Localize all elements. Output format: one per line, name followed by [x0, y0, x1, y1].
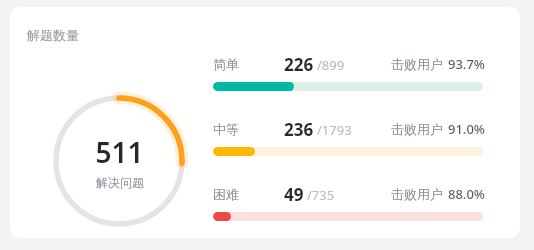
button[interactable]: 困难	[213, 183, 485, 221]
staticText: 解决问题	[96, 175, 144, 190]
staticText: 226	[284, 53, 314, 75]
staticText: 中等	[213, 121, 239, 137]
staticText: 88.0%	[448, 185, 485, 203]
staticText: 简单	[213, 56, 239, 72]
staticText: 91.0%	[448, 120, 485, 138]
button[interactable]: 已解决 511 题	[43, 85, 195, 237]
button[interactable]: 简单	[213, 53, 485, 91]
staticText: 236	[284, 118, 314, 140]
staticText: /899	[317, 56, 345, 74]
button[interactable]: 解题数量	[10, 7, 520, 238]
staticText: 击败用户	[391, 121, 443, 137]
staticText: /735	[307, 186, 335, 204]
staticText: /1793	[317, 121, 352, 139]
staticText: 511	[95, 133, 144, 171]
staticText: 击败用户	[391, 56, 443, 72]
staticText: 49	[284, 183, 304, 205]
staticText: 解题数量	[27, 27, 79, 43]
staticText: 困难	[213, 186, 239, 202]
staticText: 93.7%	[448, 55, 485, 73]
staticText: 击败用户	[391, 186, 443, 202]
button[interactable]: 中等	[213, 118, 485, 156]
